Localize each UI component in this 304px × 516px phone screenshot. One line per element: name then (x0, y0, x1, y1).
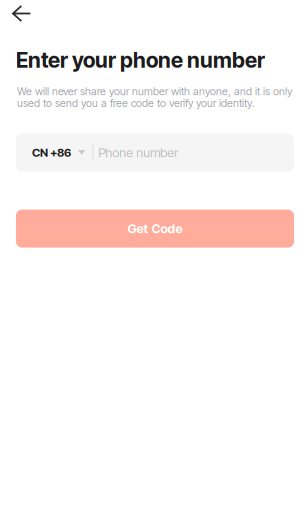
staticText: Phone number (98, 145, 178, 160)
staticText: Get Code (127, 221, 182, 236)
button[interactable]: Phone number (93, 134, 294, 172)
staticText: Enter your phone number (16, 47, 265, 73)
button[interactable]: Get Code (16, 210, 294, 248)
button[interactable]: CN +86 (16, 134, 92, 172)
staticText: used to send you a free code to verify y… (17, 97, 255, 110)
staticText: CN +86 (32, 146, 71, 160)
button[interactable]: Back (0, 0, 43, 31)
staticText: We will never share your number with any… (17, 85, 292, 98)
